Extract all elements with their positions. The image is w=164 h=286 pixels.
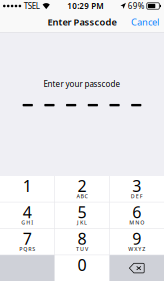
button[interactable]: 1 [0, 176, 54, 202]
staticText: P Q R S [19, 245, 35, 252]
staticText: 3 [132, 175, 141, 196]
staticText: 1 [23, 175, 32, 196]
staticText: D E F [131, 193, 143, 200]
staticText: Enter Passcode [47, 16, 116, 28]
staticText: 69% [128, 1, 145, 11]
button[interactable]: Cancel [126, 12, 164, 32]
staticText: 9 [132, 228, 141, 249]
staticText: 4 [23, 201, 32, 223]
staticText: 0 [77, 254, 86, 275]
button[interactable]: 0 [55, 255, 109, 281]
staticText: J K L [77, 219, 87, 226]
staticText: M N O [129, 219, 144, 226]
staticText: W X Y Z [128, 245, 145, 252]
button[interactable]: 6 [110, 202, 164, 228]
button[interactable]: 2 [55, 176, 109, 202]
staticText: Enter your passcode [43, 78, 120, 89]
staticText: Cancel [131, 16, 159, 28]
staticText: A B C [76, 193, 87, 200]
button[interactable]: 3 [110, 176, 164, 202]
button[interactable]: 9 [110, 229, 164, 255]
button[interactable]: 8 [55, 229, 109, 255]
staticText: TSEL [24, 1, 40, 11]
staticText: 7 [23, 228, 32, 249]
staticText: 5 [77, 201, 86, 223]
button[interactable]: 4 [0, 202, 54, 228]
staticText: 10:29 PM [67, 1, 103, 11]
button[interactable]: Delete [110, 255, 164, 281]
button[interactable]: 5 [55, 202, 109, 228]
button[interactable]: 7 [0, 229, 54, 255]
staticText: T U V [76, 245, 88, 252]
staticText: 6 [132, 201, 141, 223]
staticText: G H I [21, 219, 33, 226]
staticText: 2 [77, 175, 86, 196]
staticText: 8 [77, 228, 86, 249]
